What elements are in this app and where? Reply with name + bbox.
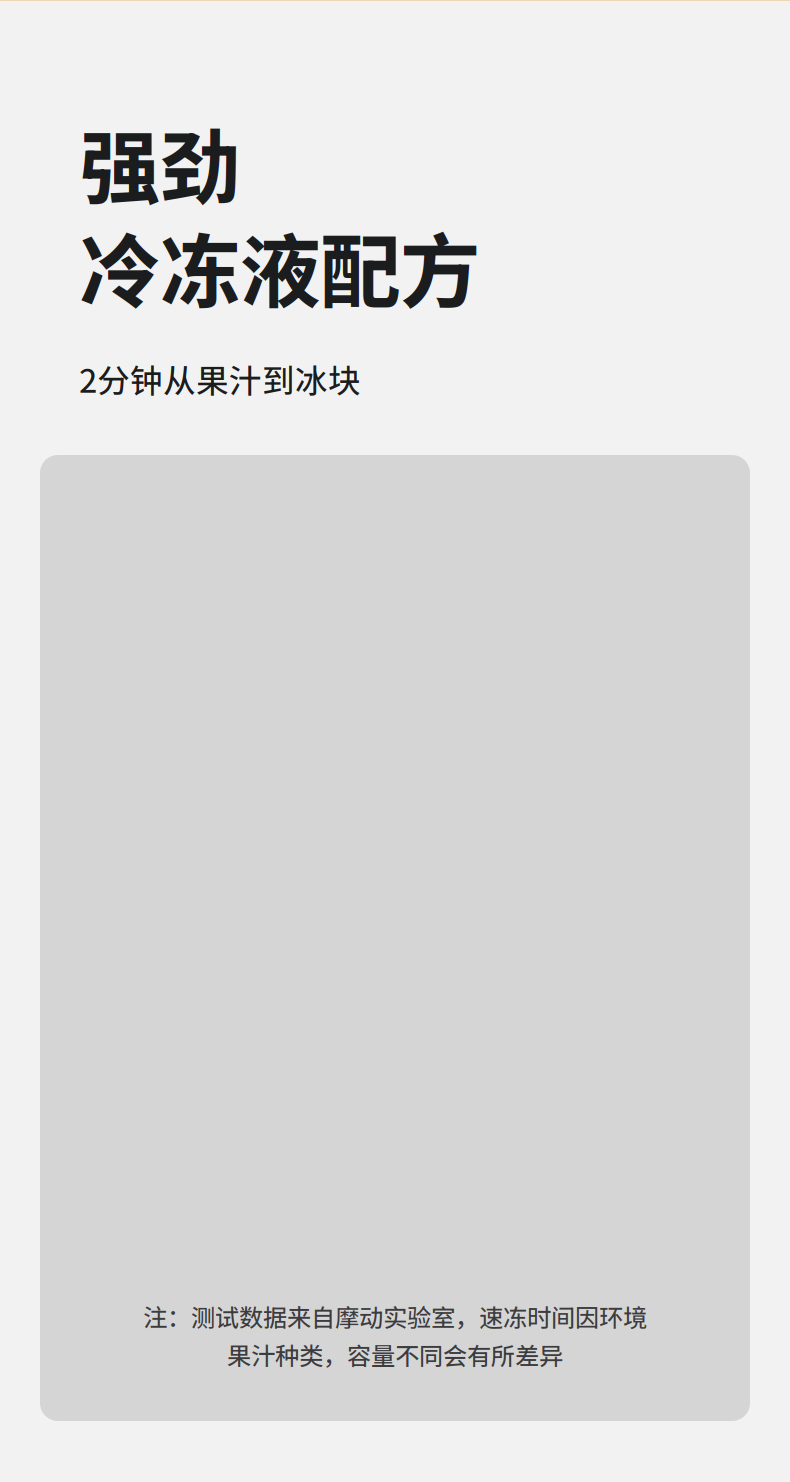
button[interactable]: 产品演示视频 — [40, 455, 750, 1421]
staticText: 冷冻液配方 — [80, 208, 480, 324]
staticText: 强劲 — [80, 104, 240, 220]
staticText: 2分钟从果汁到冰块 — [79, 355, 361, 402]
staticText: 果汁种类，容量不同会有所差异 — [227, 1337, 563, 1372]
staticText: 注：测试数据来自摩动实验室，速冻时间因环境 — [143, 1299, 647, 1334]
